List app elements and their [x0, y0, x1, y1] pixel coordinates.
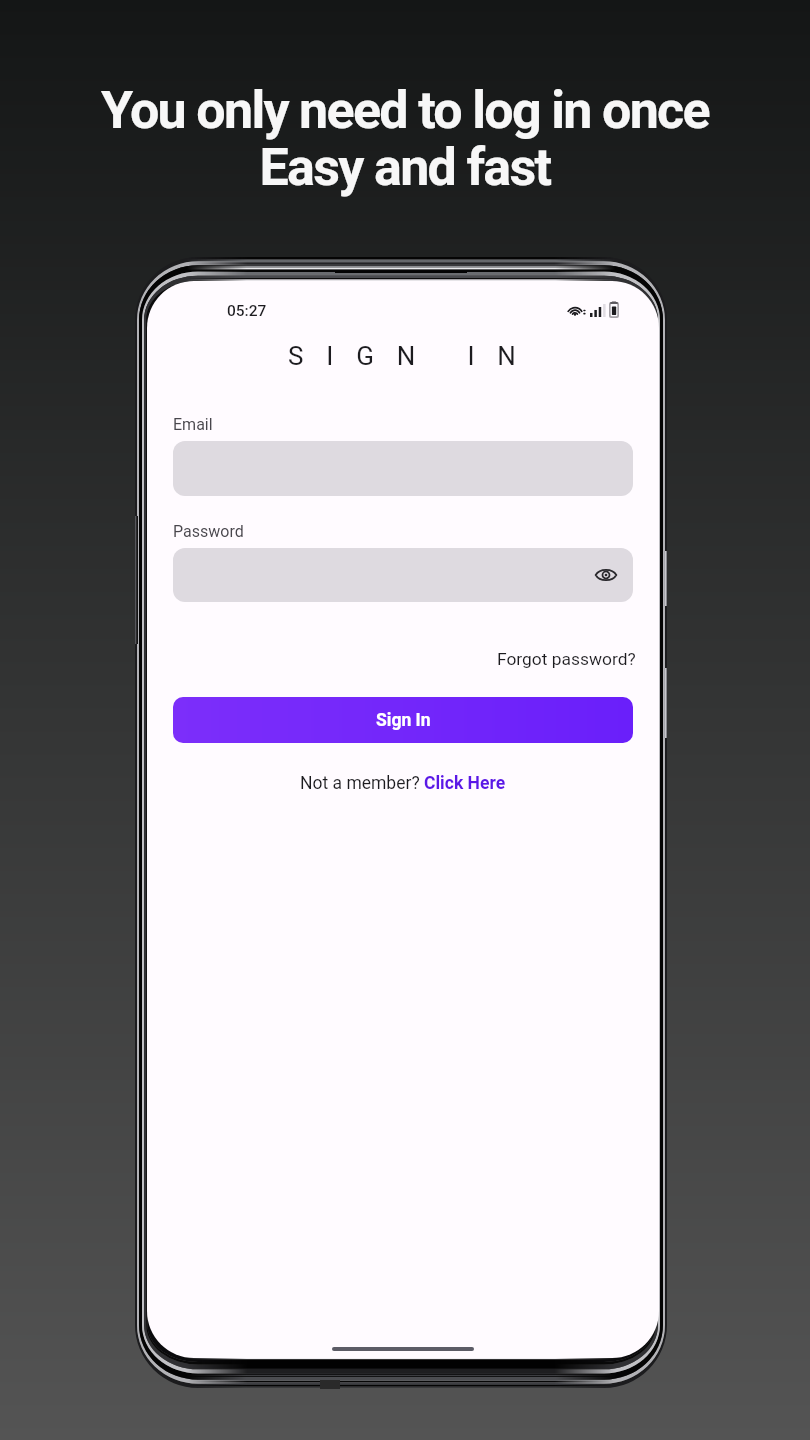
staticText: You only need to log in once Easy and fa… [0, 80, 810, 198]
staticText: Email [173, 415, 213, 434]
button[interactable]: Forgot password? [497, 649, 636, 669]
staticText: 05:27 [227, 302, 267, 320]
staticText: S I G N I N [150, 341, 659, 371]
button[interactable]: Not a member? Click Here [300, 773, 506, 794]
staticText: Sign In [376, 710, 431, 731]
button[interactable]: Sign In [173, 697, 633, 743]
button[interactable]: Show password [595, 564, 617, 586]
button[interactable]: Show password [173, 548, 633, 602]
staticText: Password [173, 522, 244, 541]
